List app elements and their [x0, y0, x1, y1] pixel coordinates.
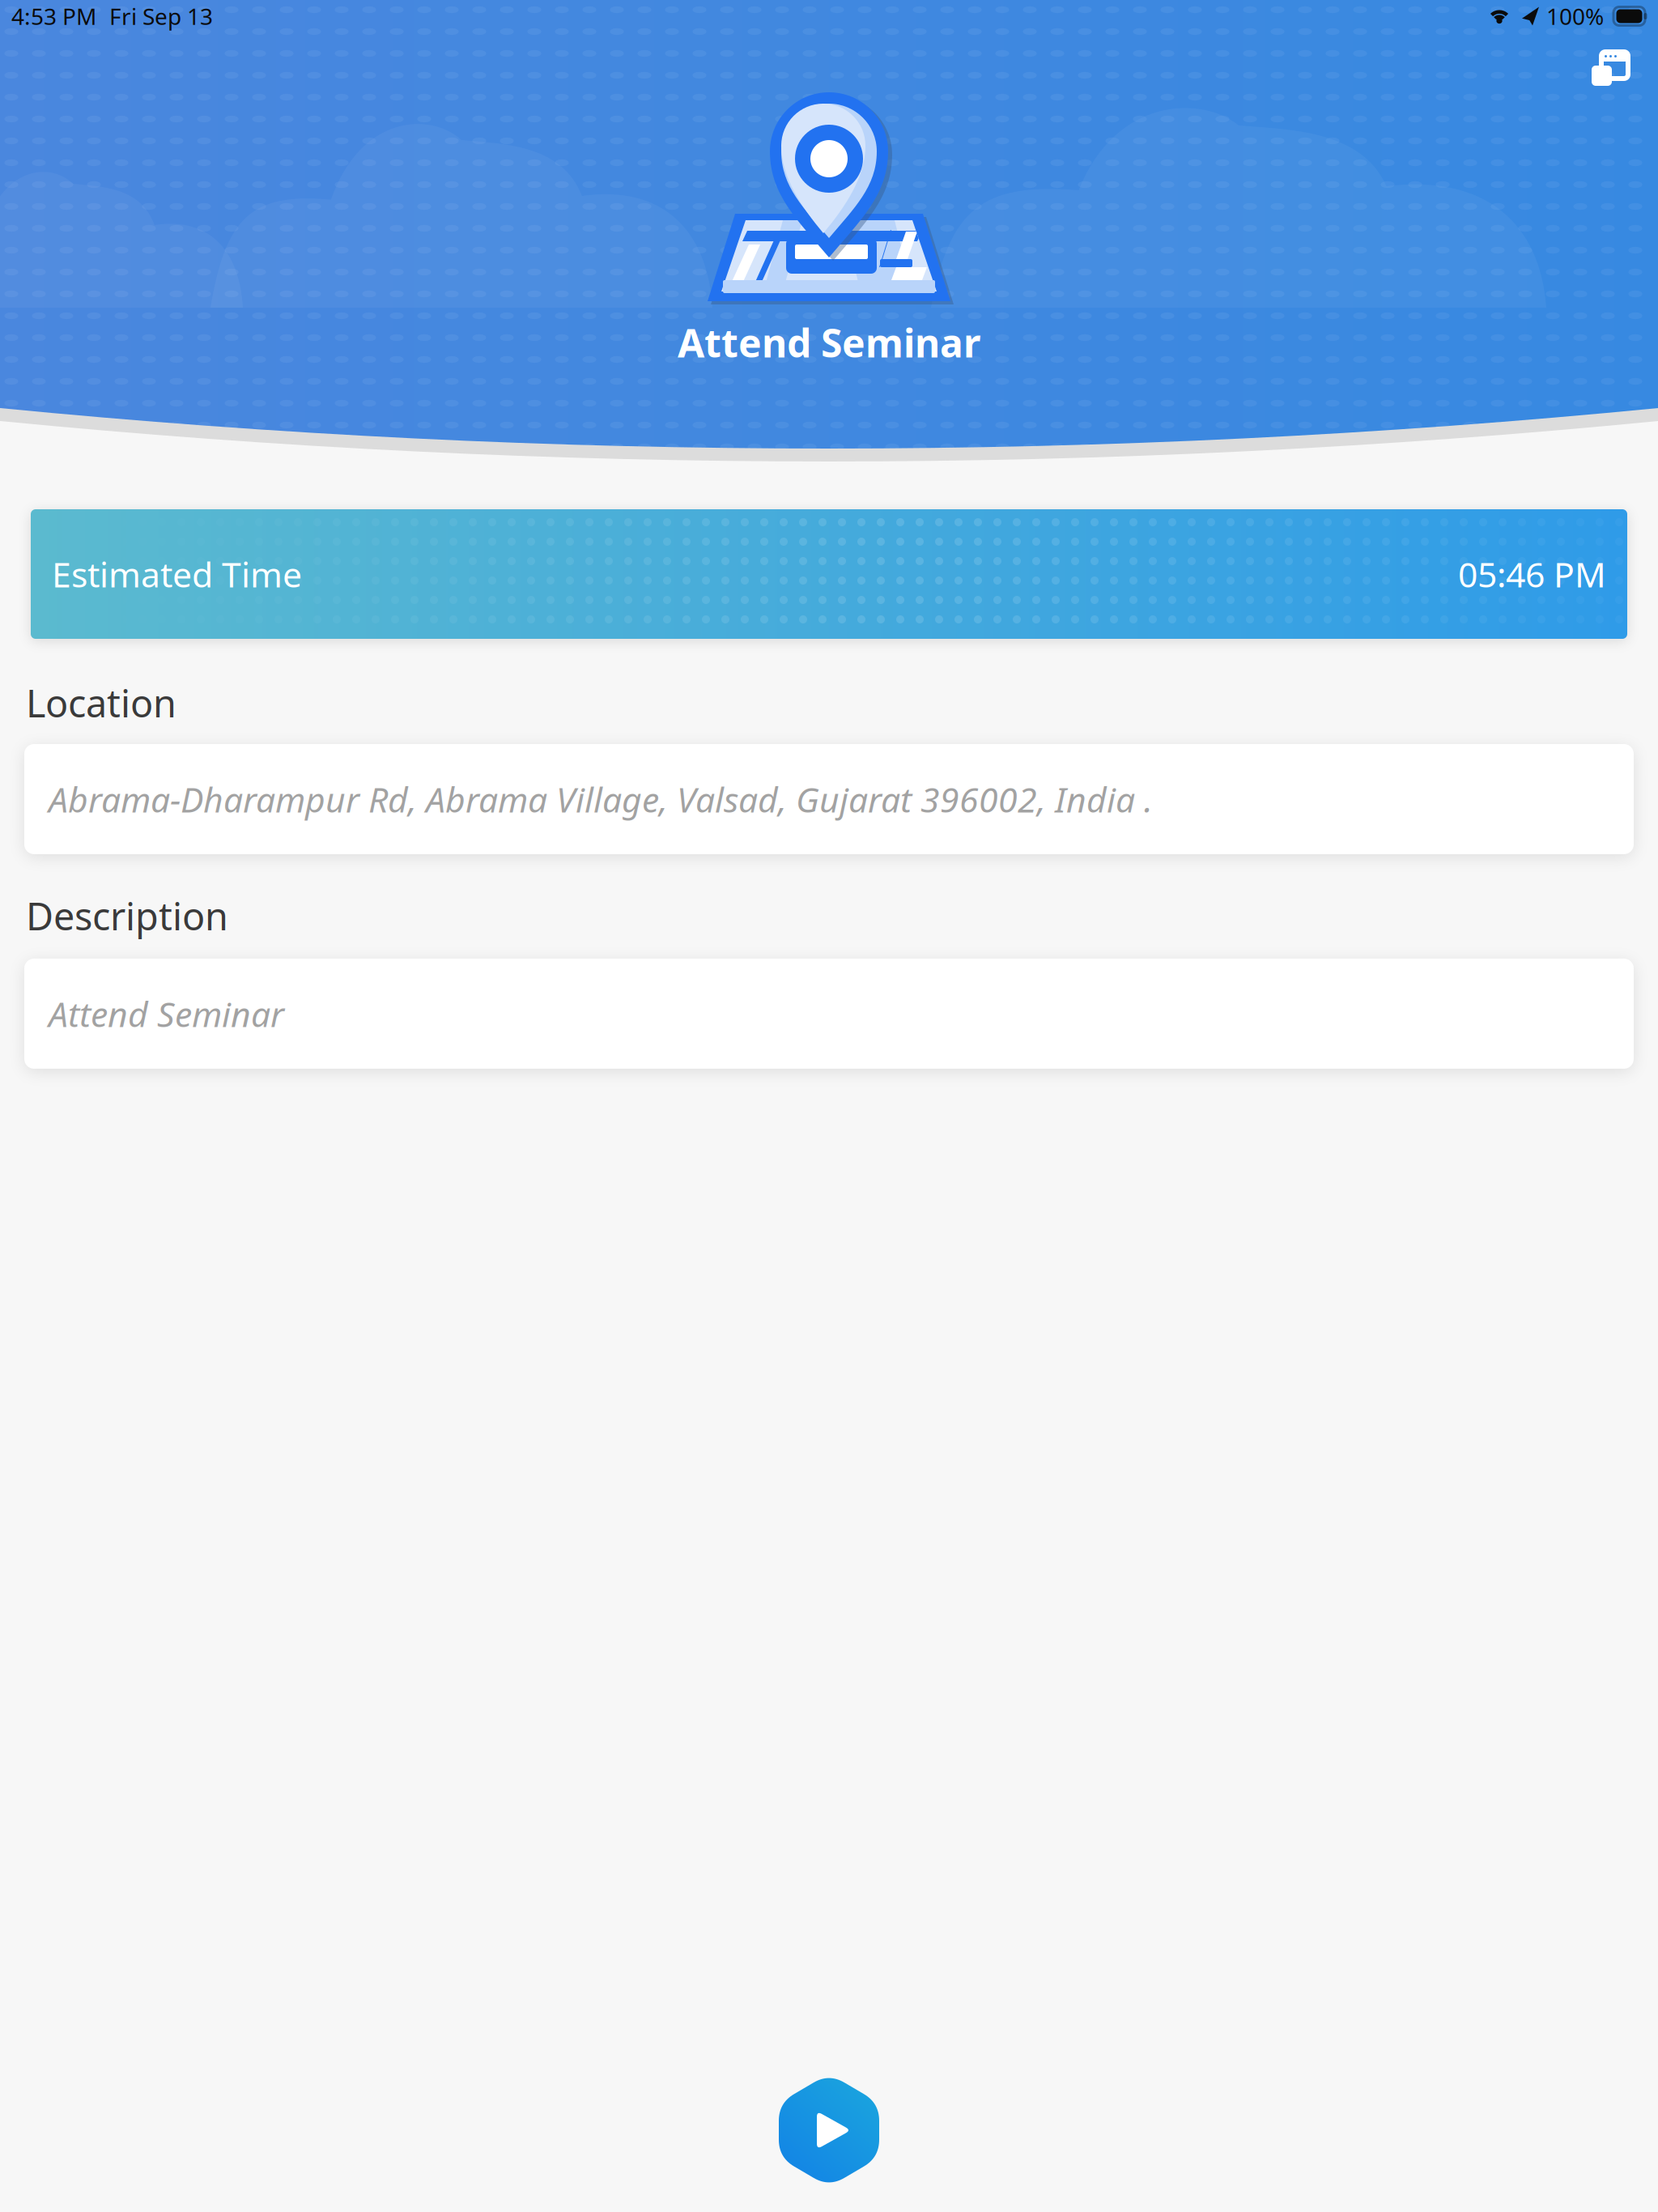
button[interactable]: Start	[764, 2061, 894, 2200]
button[interactable]: Windows	[1592, 32, 1658, 86]
staticText: 4:53 PM	[11, 1, 96, 31]
button[interactable]: Abrama-Dharampur Rd, Abrama Village, Val…	[24, 744, 1634, 854]
staticText: Estimated Time	[52, 551, 302, 597]
staticText: Fri Sep 13	[109, 1, 213, 31]
staticText: Description	[26, 891, 228, 941]
staticText: Attend Seminar	[49, 991, 284, 1037]
staticText: Location	[26, 678, 176, 728]
staticText: 100%	[1546, 1, 1604, 31]
staticText: 05:46 PM	[1458, 551, 1606, 597]
button[interactable]: Attend Seminar	[24, 959, 1634, 1069]
staticText: Attend Seminar	[678, 317, 980, 368]
staticText: Abrama-Dharampur Rd, Abrama Village, Val…	[49, 776, 1153, 822]
